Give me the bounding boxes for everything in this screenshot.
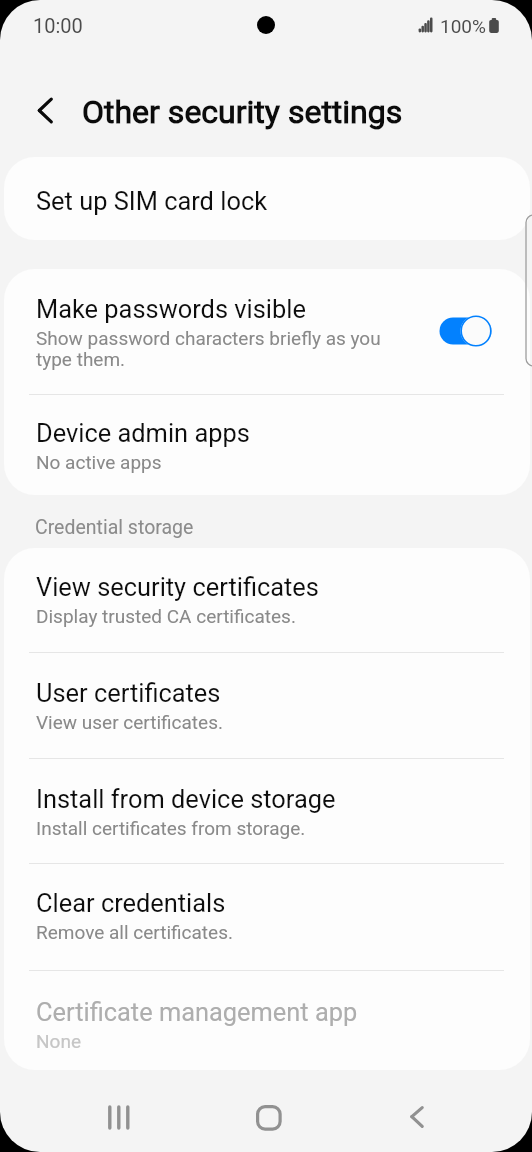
- staticText: None: [36, 1030, 81, 1052]
- staticText: User certificates: [36, 678, 221, 708]
- staticText: Make passwords visible: [36, 294, 306, 324]
- staticText: Device admin apps: [36, 418, 250, 448]
- staticText: Certificate management app: [36, 997, 358, 1027]
- staticText: Clear credentials: [36, 888, 226, 918]
- staticText: Display trusted CA certificates.: [36, 605, 296, 627]
- button[interactable]: Clear credentials: [4, 864, 530, 971]
- button[interactable]: Make passwords visible: [4, 269, 530, 395]
- staticText: No active apps: [36, 451, 162, 473]
- button[interactable]: Device admin apps: [4, 395, 530, 495]
- staticText: Install from device storage: [36, 784, 336, 814]
- button[interactable]: User certificates: [4, 653, 530, 759]
- staticText: Show password characters briefly as you …: [36, 327, 381, 371]
- button[interactable]: Navigate up: [22, 87, 68, 133]
- staticText: Credential storage: [35, 516, 194, 539]
- staticText: 100%: [440, 15, 486, 37]
- staticText: Remove all certificates.: [36, 921, 233, 943]
- button[interactable]: Install from device storage: [4, 759, 530, 864]
- staticText: View security certificates: [36, 572, 319, 602]
- button[interactable]: Recent apps: [85, 1082, 153, 1152]
- button[interactable]: Back: [383, 1082, 451, 1152]
- button[interactable]: Home: [234, 1082, 302, 1152]
- staticText: 10:00: [33, 14, 83, 37]
- staticText: View user certificates.: [36, 711, 223, 733]
- button[interactable]: Make passwords visible: [436, 312, 494, 348]
- button[interactable]: Certificate management app: [4, 971, 530, 1070]
- button[interactable]: View security certificates: [4, 548, 530, 653]
- staticText: Set up SIM card lock: [36, 186, 268, 216]
- staticText: Other security settings: [82, 93, 403, 131]
- staticText: Install certificates from storage.: [36, 817, 306, 839]
- button[interactable]: Set up SIM card lock: [4, 157, 530, 240]
